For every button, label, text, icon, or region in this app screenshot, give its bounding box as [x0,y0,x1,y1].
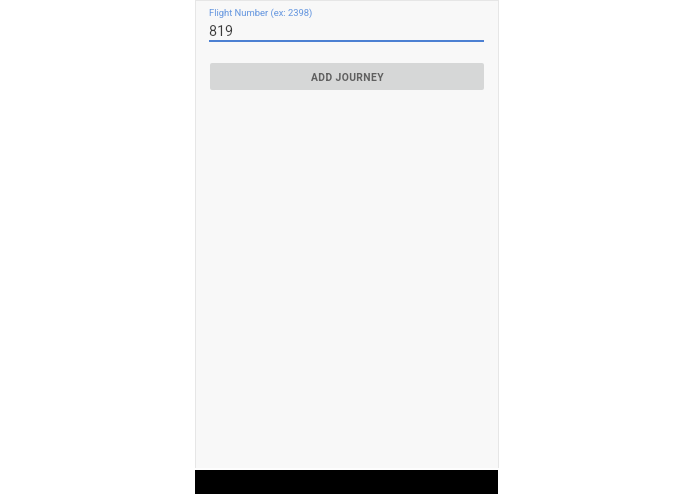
staticText: Flight Number (ex: 2398) [209,7,313,18]
staticText: ADD JOURNEY [311,71,384,83]
staticText: 819 [209,23,234,40]
button[interactable]: ADD JOURNEY [210,63,484,90]
button[interactable]: Flight Number (ex: 2398) [209,0,484,42]
